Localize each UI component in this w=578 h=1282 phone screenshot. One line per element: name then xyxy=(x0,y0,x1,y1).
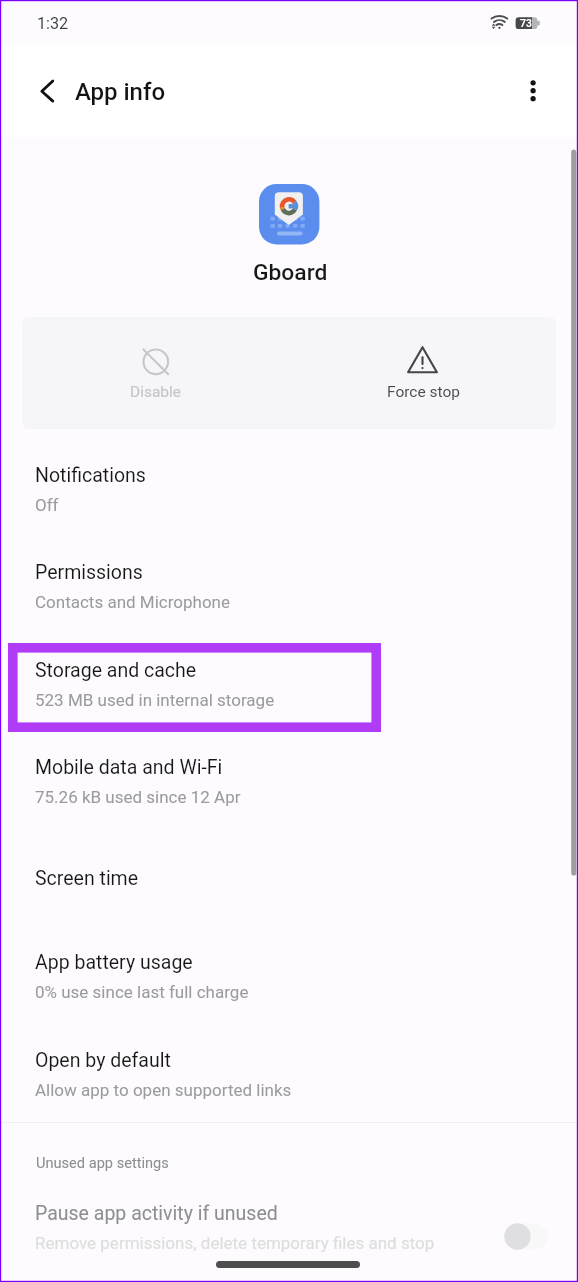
staticText: Unused app settings xyxy=(36,1154,169,1171)
button[interactable]: Notifications xyxy=(0,440,578,538)
staticText: Storage and cache xyxy=(35,659,197,682)
staticText: Open by default xyxy=(35,1049,171,1072)
staticText: Off xyxy=(35,495,59,515)
staticText: Allow app to open supported links xyxy=(35,1080,292,1100)
staticText: 73 xyxy=(520,17,532,29)
staticText: App info xyxy=(75,78,166,106)
staticText: Mobile data and Wi-Fi xyxy=(35,756,223,779)
button[interactable]: Storage and cache xyxy=(0,635,578,733)
button[interactable]: Open by default xyxy=(0,1025,578,1123)
staticText: Disable xyxy=(130,383,182,401)
staticText: 0% use since last full charge xyxy=(35,982,249,1002)
button[interactable]: Disable xyxy=(22,317,289,429)
staticText: Pause app activity if unused xyxy=(35,1202,278,1225)
button[interactable]: Permissions xyxy=(0,537,578,635)
button[interactable]: Pause app activity if unused xyxy=(0,1178,578,1275)
staticText: 523 MB used in internal storage xyxy=(35,690,275,710)
button[interactable]: App battery usage xyxy=(0,927,578,1025)
staticText: 75.26 kB used since 12 Apr xyxy=(35,787,241,807)
button[interactable]: Force stop xyxy=(289,317,556,429)
button[interactable]: Mobile data and Wi-Fi xyxy=(0,732,578,830)
staticText: Force stop xyxy=(387,383,460,401)
staticText: Notifications xyxy=(35,464,146,487)
staticText: Permissions xyxy=(35,561,143,584)
button[interactable]: More options xyxy=(509,67,557,115)
staticText: Contacts and Microphone xyxy=(35,592,231,612)
staticText: 1:32 xyxy=(37,14,69,33)
staticText: Screen time xyxy=(35,867,139,890)
staticText: App battery usage xyxy=(35,951,193,974)
button[interactable]: Navigate up xyxy=(26,67,74,115)
button[interactable]: Screen time xyxy=(0,830,578,928)
staticText: Gboard xyxy=(253,259,328,286)
staticText: Remove permissions, delete temporary fil… xyxy=(35,1233,435,1253)
